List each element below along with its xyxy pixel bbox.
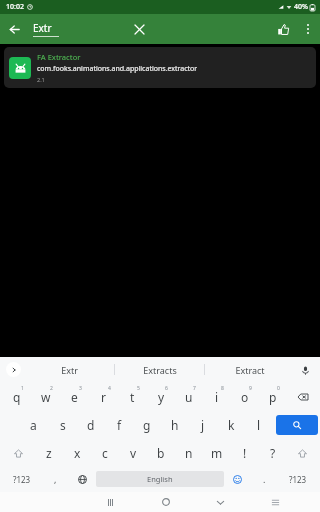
staticText: 2.1	[37, 76, 45, 83]
button[interactable]: FA Extractor	[4, 47, 316, 88]
button[interactable]: !	[231, 440, 259, 466]
staticText: ?	[270, 445, 276, 461]
button[interactable]: Backspace	[287, 384, 318, 410]
staticText: x	[74, 445, 81, 461]
staticText: y	[158, 389, 165, 405]
button[interactable]: Change language	[69, 468, 96, 490]
button[interactable]: t	[118, 384, 147, 410]
staticText: o	[241, 389, 249, 405]
staticText: !	[243, 445, 247, 461]
staticText: 3	[79, 385, 82, 392]
button[interactable]: a	[19, 412, 48, 438]
staticText: ,	[54, 473, 57, 485]
staticText: h	[171, 417, 179, 433]
staticText: 7	[193, 385, 196, 392]
button[interactable]: Hide keyboard	[193, 492, 248, 512]
staticText: 6	[165, 385, 168, 392]
button[interactable]: ,	[42, 468, 69, 490]
button[interactable]: h	[161, 412, 189, 438]
button[interactable]: y	[147, 384, 175, 410]
staticText: k	[228, 417, 235, 433]
staticText: com.fooks.animations.and.applications.ex…	[37, 64, 198, 74]
staticText: 1	[21, 385, 24, 392]
button[interactable]: Extr	[24, 357, 114, 382]
staticText: 5	[137, 385, 140, 392]
button[interactable]: m	[203, 440, 231, 466]
button[interactable]: b	[147, 440, 175, 466]
staticText: English	[147, 474, 173, 484]
button[interactable]: r	[89, 384, 118, 410]
staticText: q	[13, 389, 21, 405]
button[interactable]: More suggestions	[6, 362, 21, 377]
button[interactable]: o	[231, 384, 259, 410]
button[interactable]: .	[251, 468, 278, 490]
button[interactable]: k	[217, 412, 245, 438]
button[interactable]: Shift	[287, 440, 318, 466]
button[interactable]: j	[189, 412, 217, 438]
staticText: g	[143, 417, 151, 433]
button[interactable]: i	[203, 384, 231, 410]
staticText: z	[46, 445, 52, 461]
staticText: FA Extractor	[37, 52, 81, 62]
staticText: f	[117, 417, 122, 433]
staticText: l	[257, 417, 261, 433]
staticText: u	[185, 389, 193, 405]
button[interactable]: Switch keyboard	[248, 492, 303, 512]
staticText: r	[101, 389, 106, 405]
button[interactable]: z	[34, 440, 63, 466]
button[interactable]: p	[259, 384, 287, 410]
staticText: 2	[50, 385, 53, 392]
staticText: .	[263, 473, 266, 485]
button[interactable]: Emoji	[224, 468, 251, 490]
button[interactable]: Recents	[83, 492, 138, 512]
staticText: t	[130, 389, 135, 405]
staticText: m	[211, 445, 223, 461]
button[interactable]: d	[77, 412, 105, 438]
button[interactable]: v	[119, 440, 147, 466]
button[interactable]: Search	[276, 415, 318, 435]
staticText: 40%	[294, 2, 308, 12]
button[interactable]: ?123	[278, 468, 318, 490]
button[interactable]: English	[96, 471, 224, 487]
staticText: Extr	[61, 364, 78, 376]
button[interactable]: x	[63, 440, 91, 466]
staticText: s	[60, 417, 66, 433]
button[interactable]: f	[105, 412, 133, 438]
button[interactable]: Like	[270, 16, 296, 42]
staticText: c	[102, 445, 108, 461]
button[interactable]: u	[175, 384, 203, 410]
staticText: ?123	[13, 474, 31, 485]
staticText: 10:02	[6, 2, 24, 12]
staticText: i	[215, 389, 219, 405]
staticText: 9	[249, 385, 252, 392]
button[interactable]: n	[175, 440, 203, 466]
button[interactable]: s	[48, 412, 77, 438]
button[interactable]: g	[133, 412, 161, 438]
staticText: v	[130, 445, 137, 461]
button[interactable]: c	[91, 440, 119, 466]
button[interactable]: Voice input	[297, 362, 313, 378]
staticText: Extracts	[143, 364, 177, 376]
button[interactable]: l	[245, 412, 273, 438]
button[interactable]: e	[60, 384, 89, 410]
staticText: Extr	[33, 21, 52, 35]
button[interactable]: Back	[0, 15, 28, 43]
staticText: a	[30, 417, 37, 433]
staticText: e	[71, 389, 78, 405]
button[interactable]: Home	[138, 492, 193, 512]
button[interactable]: w	[31, 384, 60, 410]
staticText: ?123	[289, 474, 307, 485]
button[interactable]: Extracts	[115, 357, 204, 382]
button[interactable]: q	[2, 384, 31, 410]
staticText: j	[201, 417, 205, 433]
button[interactable]: Clear	[126, 16, 152, 42]
staticText: 0	[277, 385, 280, 392]
staticText: 8	[221, 385, 224, 392]
staticText: Extract	[235, 364, 265, 376]
button[interactable]: ?	[259, 440, 287, 466]
button[interactable]: ?123	[2, 468, 42, 490]
button[interactable]: More options	[296, 17, 320, 41]
button[interactable]: Shift	[2, 440, 34, 466]
button[interactable]: Extract	[205, 357, 294, 382]
staticText: 4	[108, 385, 111, 392]
